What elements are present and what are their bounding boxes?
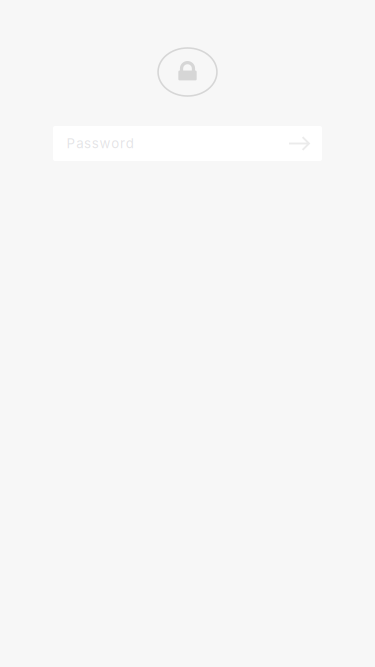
button[interactable]: Submit password bbox=[281, 136, 309, 151]
staticText: Password bbox=[66, 135, 134, 151]
